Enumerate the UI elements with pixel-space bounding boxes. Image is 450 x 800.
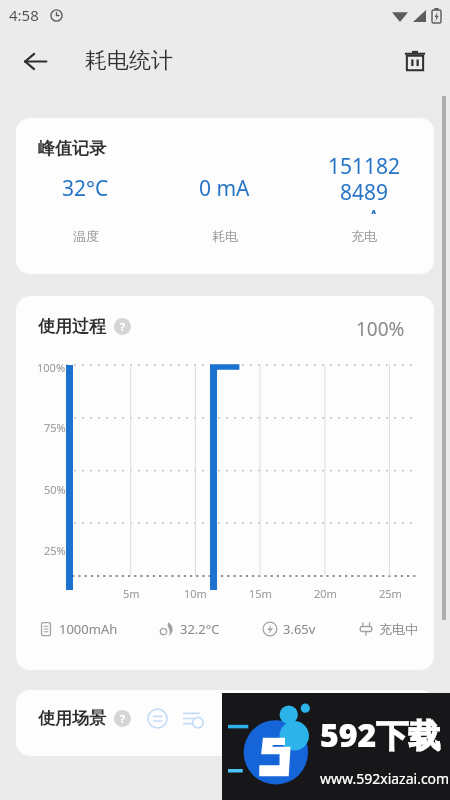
staticText: 温度 [73,228,99,244]
staticText: ? [120,711,126,726]
button[interactable]: Swap [147,708,168,729]
staticText: 25% [44,543,66,558]
staticText: 100% [356,316,405,342]
staticText: 100% [37,360,66,375]
button[interactable]: History [182,708,203,729]
button[interactable]: 使用过程 [16,296,434,670]
staticText: 75% [44,420,66,435]
staticText: 5m [123,586,140,601]
staticText: 32.2°C [180,620,220,638]
staticText: 10m [184,586,207,601]
staticText: 耗电 [212,228,238,244]
staticText: 592下载 [320,713,441,757]
staticText: ? [120,319,126,334]
staticText: 1000mAh [59,620,118,638]
staticText: 3.65v [283,620,316,638]
staticText: 15m [249,586,272,601]
staticText: 使用过程 [38,316,106,337]
staticText: 使用场景 [38,708,106,729]
button[interactable]: Help [114,710,131,727]
staticText: 0 mA [199,174,250,203]
button[interactable]: Delete [392,38,438,84]
staticText: 1511828489 mA [325,152,403,214]
button[interactable]: Back [12,38,58,84]
staticText: 50% [44,482,66,497]
button[interactable]: 峰值记录 [16,118,434,274]
button[interactable]: 使用场景 [16,690,434,756]
staticText: 峰值记录 [38,138,106,159]
staticText: www.592xiazai.com [320,769,450,788]
staticText: 20m [314,586,337,601]
button[interactable]: Help [114,318,131,335]
staticText: 32°C [62,174,109,203]
staticText: 充电 [351,228,377,244]
staticText: 充电中 [379,621,418,637]
staticText: 耗电统计 [85,47,173,75]
staticText: 4:58 [9,5,39,25]
staticText: 25m [379,586,402,601]
